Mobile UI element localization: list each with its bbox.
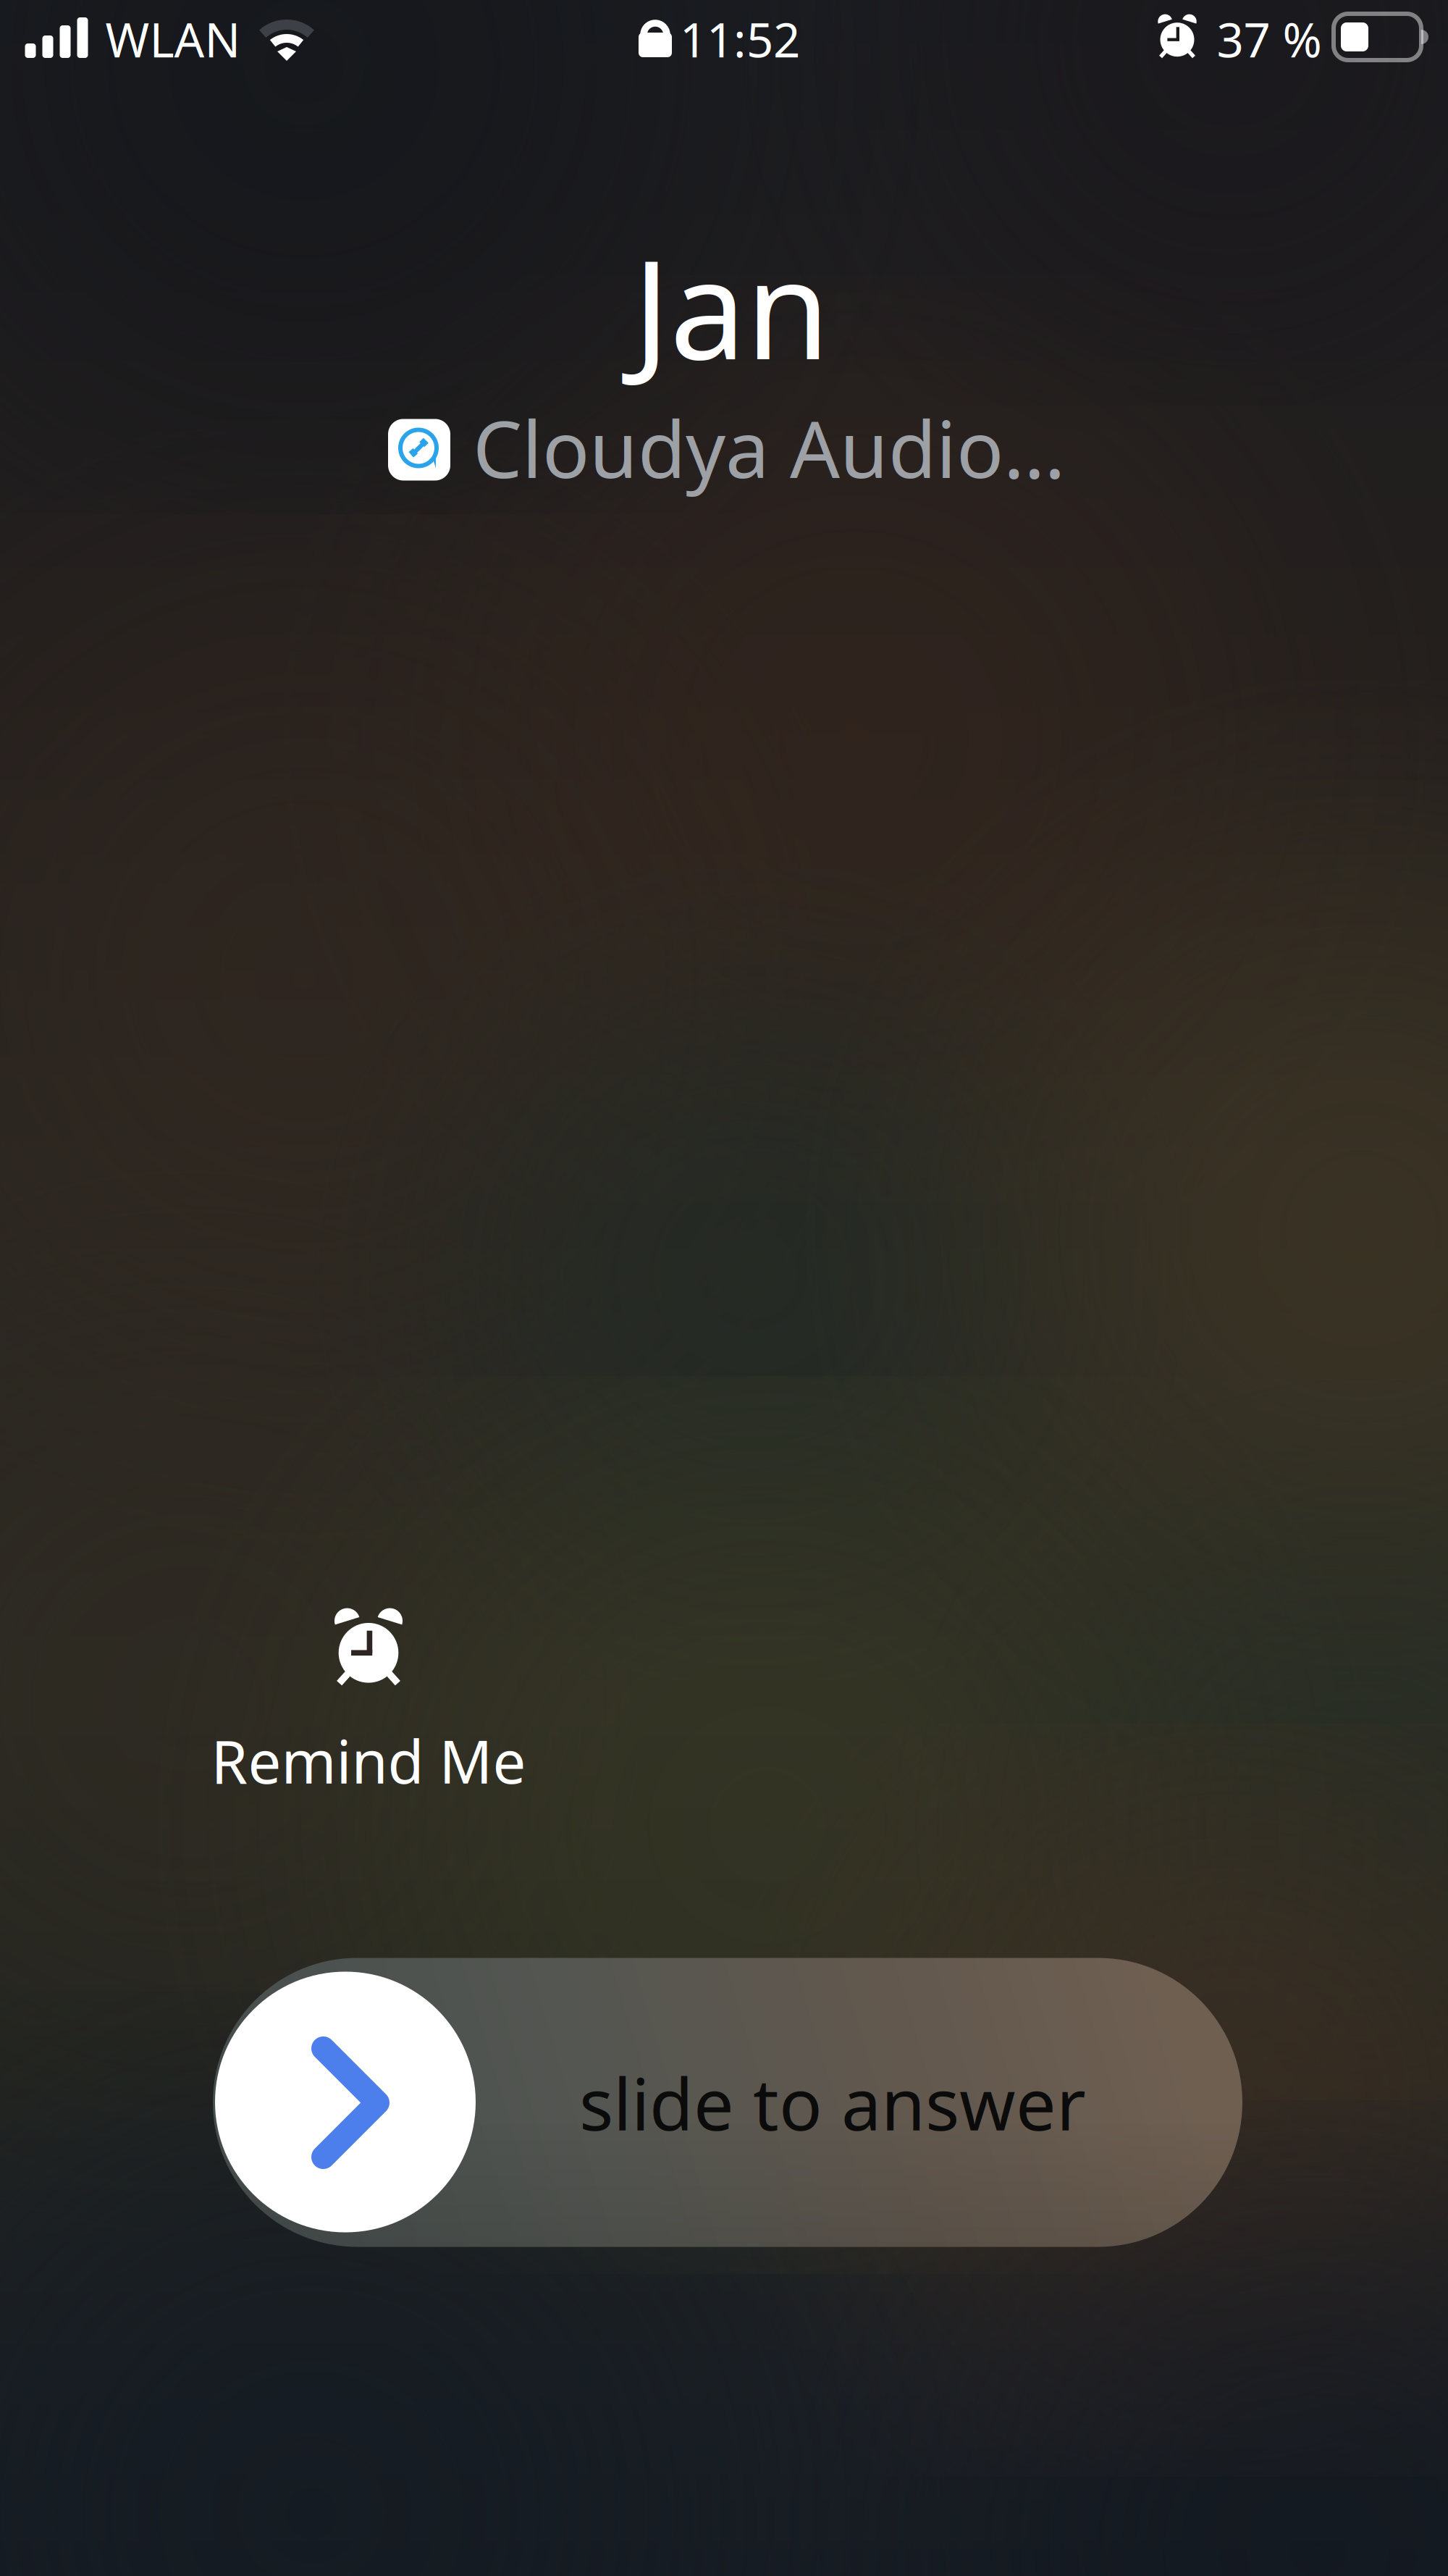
button[interactable]: slide to answer bbox=[213, 1958, 1242, 2247]
staticText: WLAN bbox=[105, 8, 241, 71]
button[interactable]: Remind Me bbox=[166, 1595, 571, 1812]
staticText: 11:52 bbox=[680, 8, 800, 71]
staticText: Jan bbox=[633, 216, 830, 397]
staticText: 37 % bbox=[1217, 8, 1322, 71]
staticText: Remind Me bbox=[211, 1722, 526, 1800]
staticText: slide to answer bbox=[579, 2055, 1086, 2150]
staticText: Cloudya Audio… bbox=[473, 396, 1065, 499]
